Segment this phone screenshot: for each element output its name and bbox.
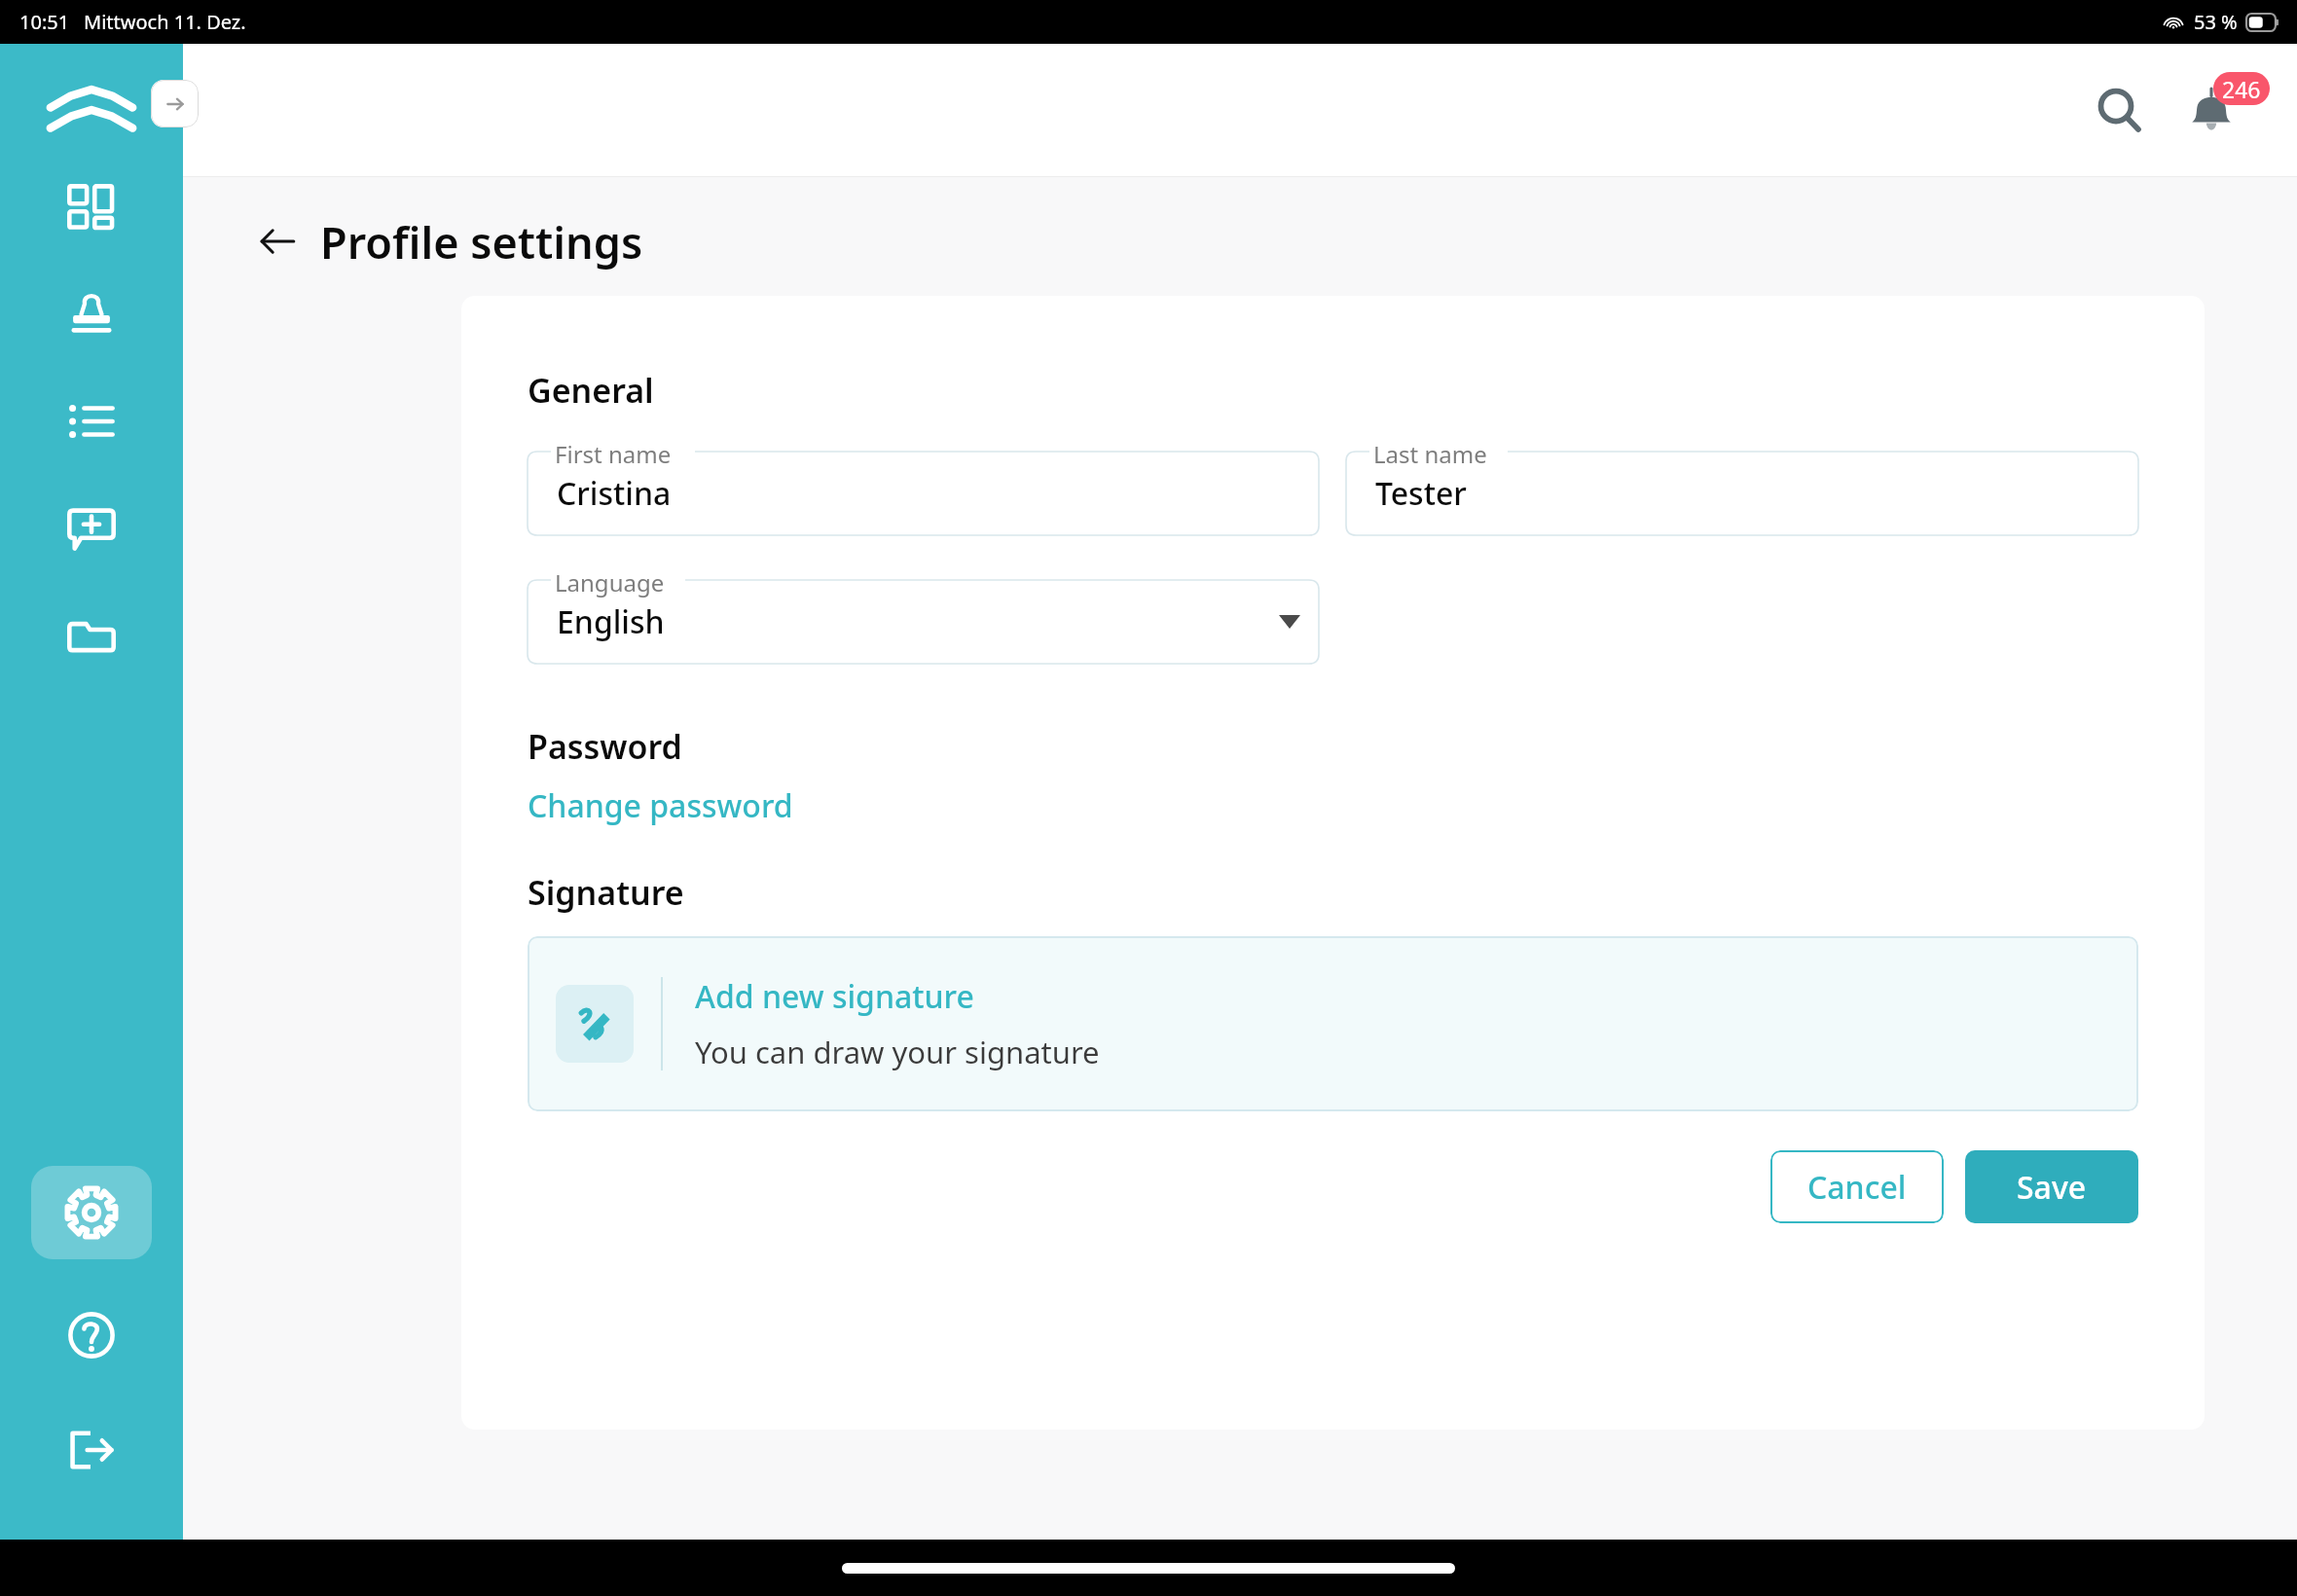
- button[interactable]: Lists: [41, 382, 142, 460]
- button[interactable]: Log out: [41, 1411, 142, 1489]
- staticText: 53 %: [2194, 9, 2238, 35]
- button[interactable]: Files: [41, 597, 142, 674]
- other: Back: [251, 215, 304, 268]
- staticText: You can draw your signature: [695, 1032, 1100, 1072]
- button[interactable]: Dashboard: [41, 168, 142, 246]
- staticText: Cancel: [1807, 1166, 1907, 1209]
- button[interactable]: Settings: [31, 1166, 152, 1259]
- button[interactable]: Expand navigation: [151, 80, 199, 127]
- staticText: Add new signature: [695, 975, 974, 1018]
- staticText: Cristina: [557, 472, 672, 515]
- staticText: English: [557, 600, 665, 643]
- button[interactable]: Save: [1965, 1150, 2138, 1223]
- staticText: Profile settings: [320, 212, 643, 272]
- staticText: 246: [2222, 74, 2261, 104]
- button[interactable]: Back: [251, 206, 643, 276]
- button[interactable]: Help: [41, 1296, 142, 1374]
- staticText: General: [528, 368, 654, 413]
- staticText: Change password: [528, 784, 793, 827]
- button[interactable]: Cancel: [1770, 1150, 1944, 1223]
- button[interactable]: New message: [41, 490, 142, 567]
- staticText: Save: [2017, 1166, 2087, 1209]
- staticText: Mittwoch 11. Dez.: [84, 9, 246, 35]
- button[interactable]: Open language list: [1260, 593, 1319, 651]
- button[interactable]: Stamps: [41, 275, 142, 353]
- staticText: Password: [528, 724, 682, 769]
- button[interactable]: Change password: [528, 779, 793, 833]
- staticText: Tester: [1375, 472, 1467, 515]
- button[interactable]: Notifications: [2176, 76, 2246, 146]
- staticText: Language: [555, 566, 665, 598]
- button[interactable]: Add new signature: [528, 936, 2138, 1111]
- button[interactable]: Home: [45, 73, 138, 147]
- button[interactable]: Search: [2085, 76, 2155, 146]
- staticText: First name: [555, 438, 672, 470]
- staticText: Last name: [1373, 438, 1487, 470]
- staticText: 10:51: [19, 9, 70, 35]
- staticText: Signature: [528, 870, 684, 915]
